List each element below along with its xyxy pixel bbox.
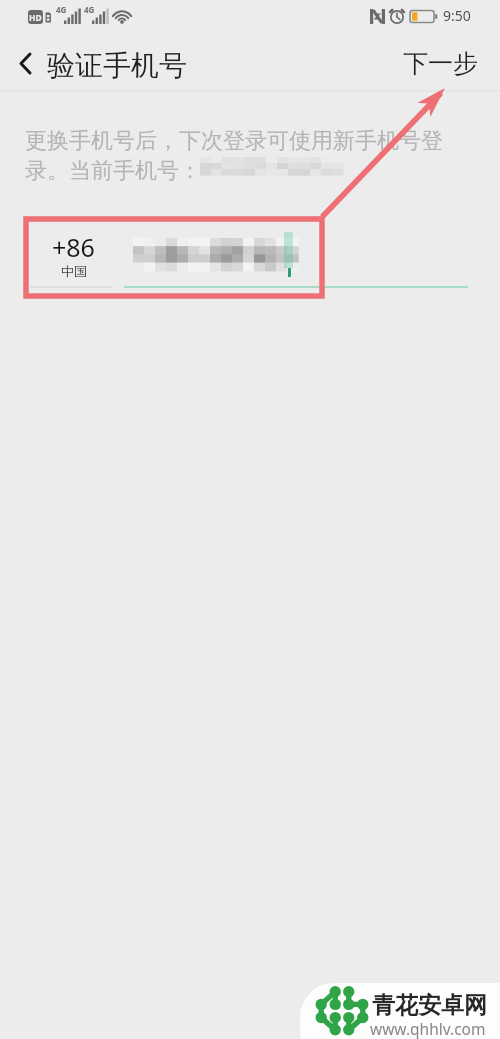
staticText: 录。当前手机号：	[25, 157, 201, 185]
staticText: +86	[52, 230, 95, 264]
staticText: 青花安卓网	[372, 991, 487, 1020]
staticText: www.qhhlv.com	[370, 1018, 486, 1039]
staticText: 4G	[84, 4, 95, 15]
staticText: 下一步	[403, 48, 478, 79]
staticText: HD	[29, 12, 42, 24]
button[interactable]: Back	[2, 40, 48, 86]
staticText: 验证手机号	[47, 48, 187, 83]
staticText: 更换手机号后，下次登录可使用新手机号登	[25, 127, 443, 155]
button[interactable]: 下一步	[392, 40, 488, 86]
staticText: 中国	[61, 263, 87, 279]
staticText: 9:50	[443, 6, 471, 25]
button[interactable]: +86	[0, 218, 500, 298]
staticText: 4G	[56, 4, 67, 15]
